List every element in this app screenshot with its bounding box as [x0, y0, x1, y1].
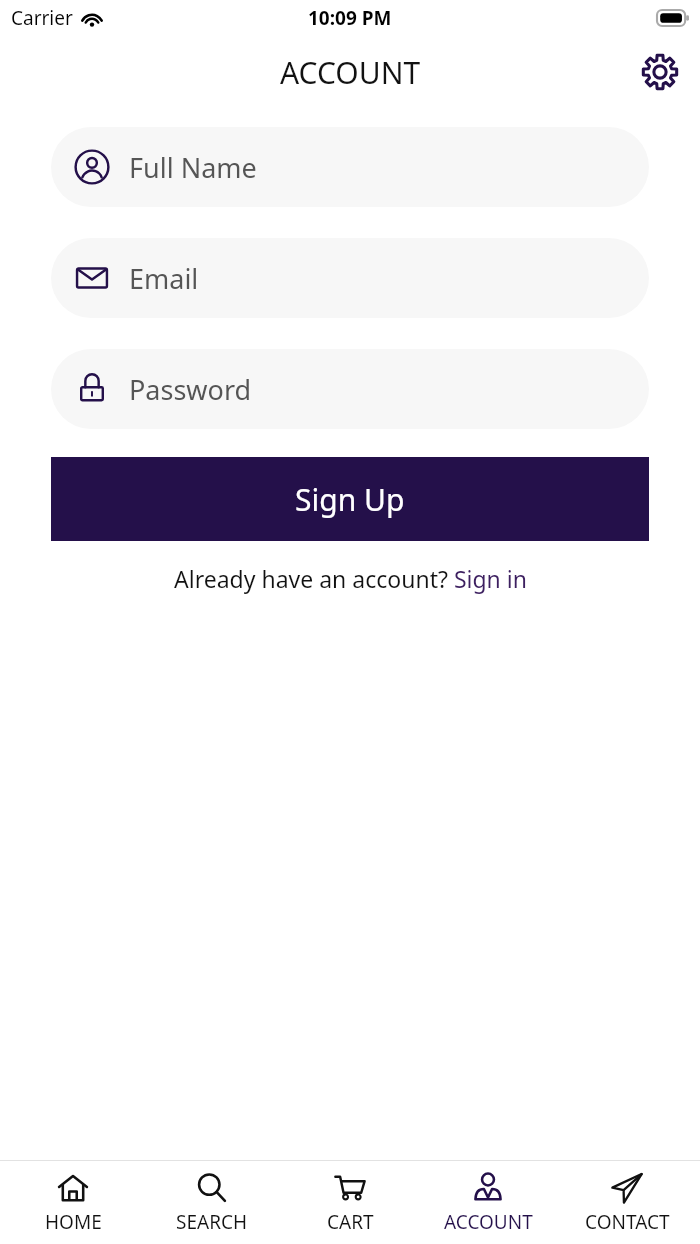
button[interactable]: Email	[51, 238, 649, 318]
button[interactable]: CART	[285, 1165, 415, 1241]
staticText: 10:09 PM	[308, 5, 392, 31]
button[interactable]: Already have an account? Sign in	[168, 561, 533, 596]
staticText: Carrier	[11, 5, 73, 31]
staticText: CONTACT	[585, 1209, 670, 1235]
button[interactable]: Sign Up	[51, 457, 649, 541]
staticText: Password	[129, 371, 252, 408]
staticText: ACCOUNT	[444, 1209, 533, 1235]
staticText: SEARCH	[176, 1209, 248, 1235]
button[interactable]: Settings	[634, 46, 686, 98]
button[interactable]: SEARCH	[147, 1165, 277, 1241]
staticText: Already have an account? Sign in	[174, 563, 527, 594]
button[interactable]: Full Name	[51, 127, 649, 207]
button[interactable]: HOME	[8, 1165, 138, 1241]
staticText: HOME	[45, 1209, 102, 1235]
button[interactable]: ACCOUNT	[423, 1165, 553, 1241]
staticText: ACCOUNT	[280, 52, 421, 93]
staticText: Email	[129, 260, 199, 297]
button[interactable]: CONTACT	[562, 1165, 692, 1241]
button[interactable]: Password	[51, 349, 649, 429]
staticText: Full Name	[129, 149, 257, 186]
staticText: CART	[327, 1209, 374, 1235]
staticText: Sign Up	[295, 479, 405, 520]
